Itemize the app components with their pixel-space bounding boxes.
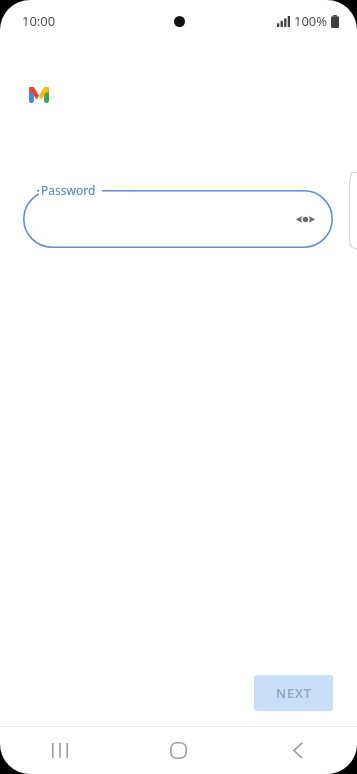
staticText: NEXT [276,684,312,702]
staticText: 100% [294,12,328,30]
button[interactable]: NEXT [254,675,333,711]
staticText: 10:00 [22,12,56,30]
button[interactable]: Home [119,727,238,774]
button[interactable]: Back [238,727,357,774]
button[interactable]: Recent apps [0,727,119,774]
button[interactable]: Password [23,190,333,248]
staticText: Password [41,182,96,198]
button[interactable]: Show password [287,201,323,237]
